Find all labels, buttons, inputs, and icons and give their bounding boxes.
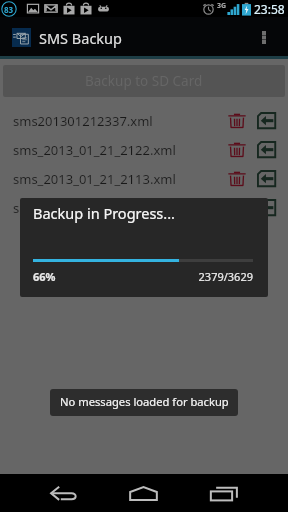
button[interactable]: Delete xyxy=(223,135,250,164)
button[interactable]: Restore xyxy=(253,164,280,193)
staticText: 23:58 xyxy=(254,1,285,17)
button[interactable]: Home xyxy=(116,474,171,512)
staticText: sms_2013_01_21_2113.xml xyxy=(13,199,176,217)
staticText: sms201301212337.xml xyxy=(13,112,153,130)
button[interactable]: Back xyxy=(36,474,91,512)
staticText: No messages loaded for backup xyxy=(60,394,229,409)
button[interactable]: sms_2013_01_21_2122.xml xyxy=(0,135,288,164)
staticText: sms_2013_01_21_2122.xml xyxy=(13,141,176,159)
button[interactable]: sms_2013_01_21_2113.xml xyxy=(0,193,288,222)
staticText: Backup in Progress... xyxy=(33,203,175,223)
button[interactable]: Delete xyxy=(223,193,250,222)
button[interactable]: Delete xyxy=(223,164,250,193)
button[interactable]: sms_2013_01_21_2113.xml xyxy=(0,164,288,193)
button[interactable]: sms201301212337.xml xyxy=(0,106,288,135)
staticText: 66% xyxy=(33,269,56,284)
button[interactable]: Recent apps xyxy=(196,474,251,512)
staticText: 83 xyxy=(4,4,14,15)
button[interactable]: Restore xyxy=(253,135,280,164)
button[interactable]: Delete xyxy=(223,106,250,135)
button[interactable]: More options xyxy=(252,17,288,56)
staticText: Backup to SD Card xyxy=(85,72,203,90)
staticText: 3G xyxy=(217,1,227,11)
staticText: SMS Backup xyxy=(39,28,122,48)
button[interactable]: Restore xyxy=(253,106,280,135)
staticText: sms_2013_01_21_2113.xml xyxy=(13,170,176,188)
staticText: 2379/3629 xyxy=(153,269,253,284)
button[interactable]: Restore xyxy=(253,193,280,222)
